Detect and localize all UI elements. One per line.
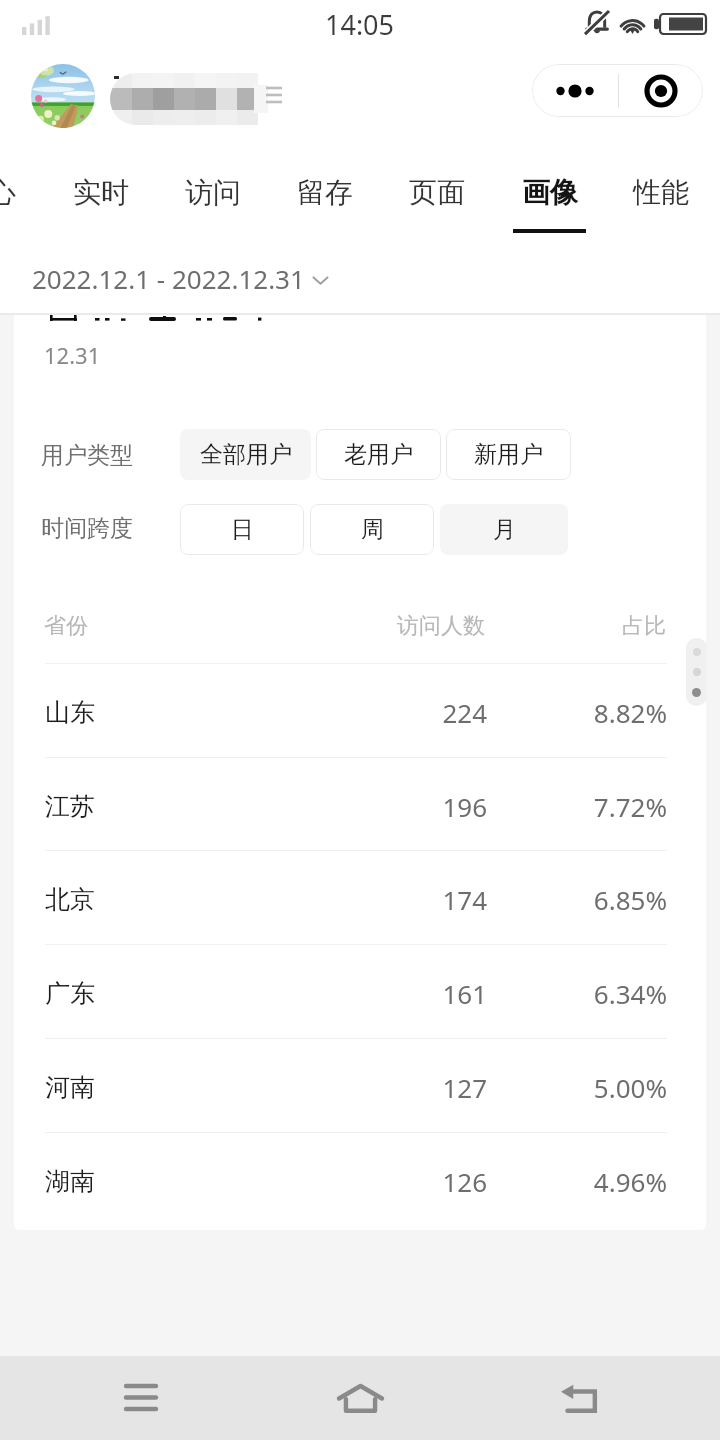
staticText: 性能 (633, 175, 689, 210)
staticText: 月 (493, 515, 516, 544)
staticText: 中心 (0, 175, 16, 210)
staticText: 省份 (44, 612, 88, 640)
staticText: 日 (231, 515, 254, 544)
staticText: 6.85% (487, 882, 667, 917)
staticText: 画像 (522, 175, 578, 210)
button[interactable]: 页面 (381, 144, 493, 244)
staticText: 6.34% (487, 976, 667, 1011)
staticText: 126 (305, 1164, 487, 1199)
button[interactable]: 周 (310, 504, 434, 555)
staticText: 174 (305, 882, 487, 917)
staticText: 8.82% (487, 695, 667, 730)
staticText: 访问人数 (314, 612, 485, 640)
staticText: 全部用户 (200, 440, 292, 469)
staticText: 12.31 (44, 340, 101, 370)
staticText: 河南 (45, 1072, 305, 1103)
button[interactable]: 中心 (0, 144, 44, 244)
button[interactable]: 留存 (269, 144, 381, 244)
staticText: 实时 (73, 175, 129, 210)
staticText: 5.00% (487, 1070, 667, 1105)
button[interactable]: 日 (180, 504, 304, 555)
button[interactable]: 访问 (157, 144, 269, 244)
button[interactable]: Close mini program (619, 64, 703, 117)
button[interactable]: 2022.12.1 - 2022.12.31 (32, 258, 329, 298)
staticText: 广东 (45, 978, 305, 1009)
staticText: 页面 (409, 175, 465, 210)
button[interactable]: 性能 (605, 144, 717, 244)
staticText: 周 (361, 515, 384, 544)
staticText: 北京 (45, 884, 305, 915)
button[interactable]: Back (519, 1356, 639, 1440)
staticText: 新用户 (474, 440, 543, 469)
button[interactable]: 江苏 (45, 759, 667, 853)
staticText: 127 (305, 1070, 487, 1105)
staticText: 14:05 (325, 6, 395, 43)
staticText: 196 (305, 789, 487, 824)
button[interactable]: Home (300, 1356, 420, 1440)
button[interactable]: 北京 (45, 852, 667, 946)
button[interactable]: 实时 (45, 144, 157, 244)
staticText: 湖南 (45, 1166, 305, 1197)
button[interactable]: 河南 (45, 1040, 667, 1134)
staticText: 4.96% (487, 1164, 667, 1199)
button[interactable]: 湖南 (45, 1134, 667, 1228)
button[interactable]: 全部用户 (180, 429, 311, 480)
staticText: 占比 (514, 612, 666, 640)
button[interactable]: Recent apps (81, 1356, 201, 1440)
staticText: 江苏 (45, 791, 305, 822)
staticText: 用户类型 (41, 441, 133, 470)
button[interactable]: 画像 (493, 144, 605, 244)
staticText: 时间跨度 (41, 514, 133, 543)
staticText: 老用户 (344, 440, 413, 469)
staticText: 山东 (45, 697, 305, 728)
button[interactable]: 山东 (45, 665, 667, 759)
staticText: 7.72% (487, 789, 667, 824)
button[interactable]: 新用户 (446, 429, 571, 480)
button[interactable]: 老用户 (316, 429, 441, 480)
button[interactable]: 月 (440, 504, 568, 555)
button[interactable]: More options (532, 64, 618, 117)
staticText: 224 (305, 695, 487, 730)
staticText: 留存 (297, 175, 353, 210)
button[interactable]: 广东 (45, 946, 667, 1040)
staticText: 2022.12.1 - 2022.12.31 (32, 261, 305, 296)
staticText: 161 (305, 976, 487, 1011)
staticText: 访问 (185, 175, 241, 210)
